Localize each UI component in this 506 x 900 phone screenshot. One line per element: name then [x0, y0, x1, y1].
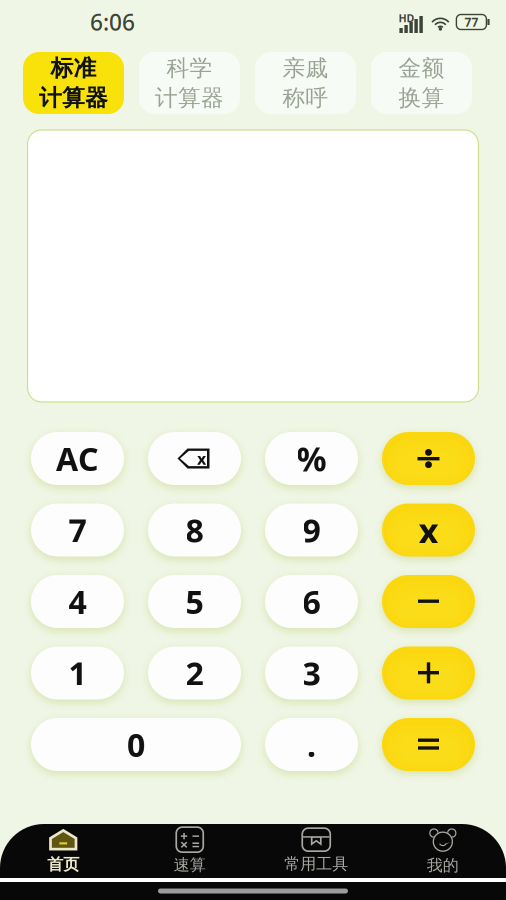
- button[interactable]: 金额: [371, 52, 472, 114]
- staticText: 金额: [398, 54, 444, 82]
- button[interactable]: +: [382, 646, 475, 699]
- staticText: 速算: [174, 855, 206, 875]
- button[interactable]: 9: [265, 503, 358, 556]
- button[interactable]: x: [382, 503, 475, 556]
- staticText: 6: [302, 580, 320, 623]
- button[interactable]: 标准: [23, 52, 124, 114]
- button[interactable]: 科学: [139, 52, 240, 114]
- staticText: 换算: [398, 84, 444, 112]
- staticText: 计算器: [155, 84, 224, 112]
- staticText: 标准: [50, 54, 96, 82]
- staticText: 首页: [47, 855, 79, 874]
- button[interactable]: =: [382, 718, 475, 771]
- staticText: 称呼: [282, 84, 328, 112]
- button[interactable]: 亲戚: [255, 52, 356, 114]
- staticText: 5: [185, 580, 203, 623]
- button[interactable]: .: [265, 718, 358, 771]
- button[interactable]: 6: [265, 575, 358, 628]
- button[interactable]: Backspace: [148, 432, 241, 485]
- staticText: 6:06: [90, 7, 135, 37]
- staticText: 4: [68, 580, 86, 623]
- staticText: 科学: [166, 54, 212, 82]
- button[interactable]: 4: [31, 575, 124, 628]
- button[interactable]: 3: [265, 646, 358, 699]
- staticText: 9: [302, 509, 320, 551]
- button[interactable]: 8: [148, 503, 241, 556]
- staticText: x: [197, 448, 206, 469]
- button[interactable]: 常用工具: [253, 824, 379, 878]
- staticText: 常用工具: [284, 854, 348, 874]
- staticText: 7: [68, 509, 86, 551]
- button[interactable]: 我的: [379, 824, 506, 878]
- button[interactable]: 7: [31, 503, 124, 556]
- staticText: 3: [302, 652, 320, 694]
- button[interactable]: 首页: [0, 824, 126, 878]
- staticText: HD: [398, 11, 414, 25]
- button[interactable]: %: [265, 432, 358, 485]
- staticText: .: [307, 723, 316, 766]
- staticText: 77: [464, 14, 478, 30]
- staticText: 1: [68, 652, 86, 694]
- button[interactable]: −: [382, 575, 475, 628]
- staticText: 2: [185, 652, 203, 694]
- button[interactable]: AC: [31, 432, 124, 485]
- button[interactable]: 0: [31, 718, 241, 771]
- button[interactable]: 2: [148, 646, 241, 699]
- button[interactable]: 1: [31, 646, 124, 699]
- button[interactable]: 速算: [126, 824, 253, 878]
- staticText: 8: [185, 509, 203, 551]
- button[interactable]: 5: [148, 575, 241, 628]
- staticText: %: [296, 436, 326, 481]
- staticText: x: [418, 507, 438, 553]
- staticText: AC: [56, 437, 99, 480]
- button[interactable]: ÷: [382, 432, 475, 485]
- staticText: 0: [127, 723, 145, 766]
- staticText: 亲戚: [282, 54, 328, 82]
- staticText: 我的: [427, 856, 459, 875]
- staticText: 计算器: [39, 84, 108, 112]
